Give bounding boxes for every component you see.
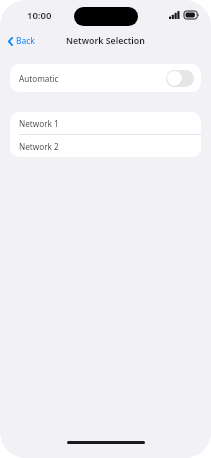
- staticText: 10:00: [27, 9, 52, 22]
- button[interactable]: Back: [0, 32, 43, 50]
- staticText: Network Selection: [66, 35, 145, 47]
- button[interactable]: Network 1: [10, 112, 201, 134]
- staticText: Automatic: [19, 73, 59, 84]
- button[interactable]: Network 2: [10, 135, 201, 157]
- button[interactable]: Automatic: [10, 64, 201, 92]
- staticText: Back: [16, 35, 35, 47]
- staticText: Network 2: [19, 141, 59, 152]
- button[interactable]: Automatic network selection toggle: [166, 70, 194, 87]
- staticText: Network 1: [19, 118, 59, 129]
